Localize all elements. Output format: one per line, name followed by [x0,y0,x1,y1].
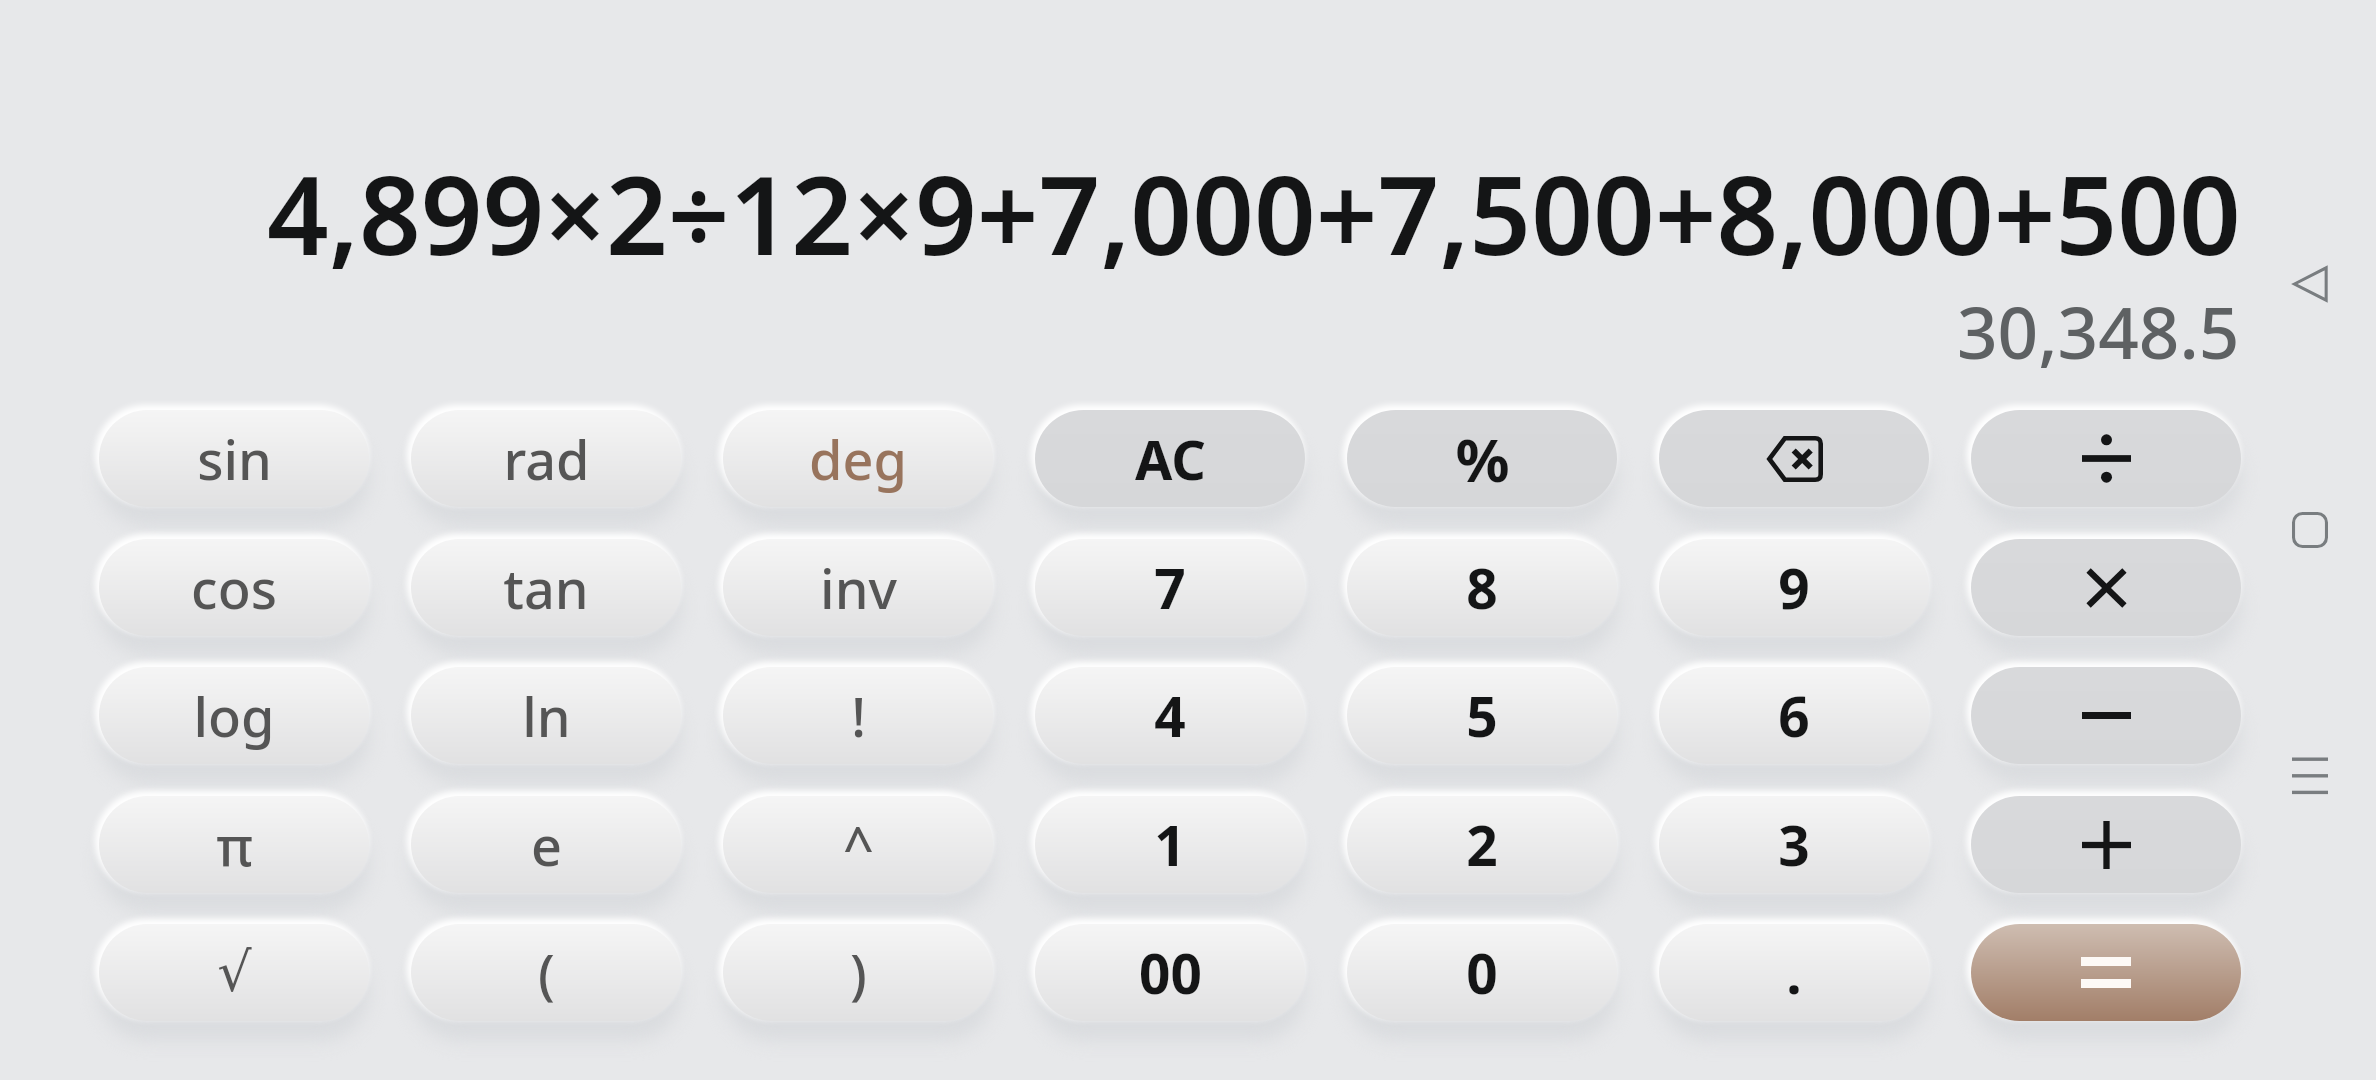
staticText: e [531,808,562,882]
button[interactable]: ) [723,924,993,1021]
staticText: 2 [1466,807,1498,882]
staticText: log [193,679,275,753]
staticText: 00 [1139,935,1202,1010]
button[interactable]: 00 [1035,924,1305,1021]
button[interactable]: ( [411,924,681,1021]
staticText: deg [809,422,907,496]
staticText: ^ [843,808,874,882]
button[interactable]: deg [723,410,993,507]
button[interactable]: √ [99,924,369,1021]
staticText: 7 [1154,550,1186,625]
staticText: 8 [1466,550,1498,625]
staticText: 0 [1466,935,1498,1010]
button[interactable]: Home [2292,512,2328,548]
staticText: ) [850,936,867,1010]
button[interactable]: 2 [1347,796,1617,893]
staticText: 9 [1778,550,1810,625]
staticText: √ [217,941,252,1004]
staticText: 30,348.5 [1957,283,2240,380]
staticText: ln [522,679,571,753]
staticText: 4,899×2÷12×9+7,000+7,500+8,000+500 [267,140,2241,287]
staticText: 6 [1778,678,1810,753]
button[interactable]: Equals [1971,924,2241,1021]
button[interactable]: Divide [1971,410,2241,507]
button[interactable]: ln [411,667,681,764]
button[interactable]: ^ [723,796,993,893]
button[interactable]: 3 [1659,796,1929,893]
button[interactable]: Plus [1971,796,2241,893]
button[interactable]: 9 [1659,539,1929,636]
button[interactable]: Minus [1971,667,2241,764]
staticText: 5 [1466,678,1498,753]
staticText: 3 [1778,807,1810,882]
button[interactable]: AC [1035,410,1305,507]
staticText: π [216,808,253,882]
button[interactable]: Multiply [1971,539,2241,636]
button[interactable]: ! [723,667,993,764]
button[interactable]: inv [723,539,993,636]
button[interactable]: Recents [2292,752,2328,798]
button[interactable]: π [99,796,369,893]
staticText: inv [820,551,897,625]
staticText: tan [503,551,589,625]
staticText: ( [538,936,555,1010]
button[interactable]: 1 [1035,796,1305,893]
button[interactable]: rad [411,410,681,507]
staticText: ! [851,679,866,753]
button[interactable]: 0 [1347,924,1617,1021]
button[interactable]: Back [2292,266,2328,302]
button[interactable]: e [411,796,681,893]
button[interactable]: . [1659,924,1929,1021]
staticText: rad [503,422,590,496]
staticText: 1 [1154,807,1186,882]
staticText: 4 [1154,678,1186,753]
button[interactable]: cos [99,539,369,636]
button[interactable]: 8 [1347,539,1617,636]
button[interactable]: Backspace [1659,410,1929,507]
button[interactable]: % [1347,410,1617,507]
button[interactable]: 4 [1035,667,1305,764]
button[interactable]: 7 [1035,539,1305,636]
button[interactable]: tan [411,539,681,636]
button[interactable]: sin [99,410,369,507]
staticText: . [1786,935,1802,1010]
staticText: sin [197,422,272,496]
staticText: % [1455,418,1510,500]
staticText: cos [191,551,277,625]
staticText: AC [1135,422,1206,496]
button[interactable]: log [99,667,369,764]
button[interactable]: 5 [1347,667,1617,764]
button[interactable]: 6 [1659,667,1929,764]
